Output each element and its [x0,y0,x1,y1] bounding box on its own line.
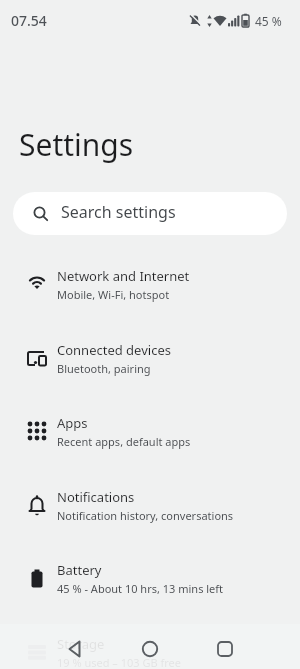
staticText: Settings [19,124,134,165]
staticText: Apps [57,414,88,432]
button[interactable]: Search settings [13,192,287,235]
staticText: Storage [57,635,105,653]
staticText: 45 % - About 10 hrs, 13 mins left [57,581,224,596]
staticText: Notifications [57,488,135,506]
staticText: Search settings [61,201,176,223]
button[interactable]: Notifications [0,468,300,542]
button[interactable] [128,624,172,669]
button[interactable] [53,624,97,669]
button[interactable]: Battery [0,541,300,615]
staticText: 07.54 [11,11,47,30]
button[interactable]: Apps [0,394,300,468]
staticText: 45 % [255,13,282,29]
staticText: Network and Internet [57,267,190,285]
button[interactable]: Network and Internet [0,247,300,321]
staticText: Bluetooth, pairing [57,361,151,376]
staticText: Mobile, Wi-Fi, hotspot [57,287,170,302]
button[interactable]: Storage [0,615,300,669]
staticText: 19 % used – 103 GB free [57,655,181,669]
staticText: Connected devices [57,341,171,359]
staticText: Battery [57,561,102,579]
staticText: Recent apps, default apps [57,434,191,449]
button[interactable]: Connected devices [0,321,300,395]
staticText: Notification history, conversations [57,508,234,523]
button[interactable] [203,624,247,669]
